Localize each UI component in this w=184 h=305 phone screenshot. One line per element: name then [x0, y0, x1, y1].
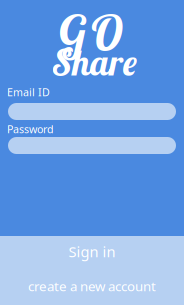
staticText: Share — [51, 39, 136, 84]
button[interactable]: Password — [0, 0, 184, 305]
staticText: create a new account — [28, 277, 156, 295]
staticText: Sign in — [68, 242, 115, 261]
button[interactable]: Sign in — [0, 236, 184, 267]
button[interactable]: Email ID — [0, 0, 184, 305]
staticText: Password — [7, 122, 54, 136]
button[interactable]: create a new account — [0, 267, 184, 305]
staticText: GO — [59, 3, 123, 63]
staticText: Email ID — [7, 85, 50, 99]
